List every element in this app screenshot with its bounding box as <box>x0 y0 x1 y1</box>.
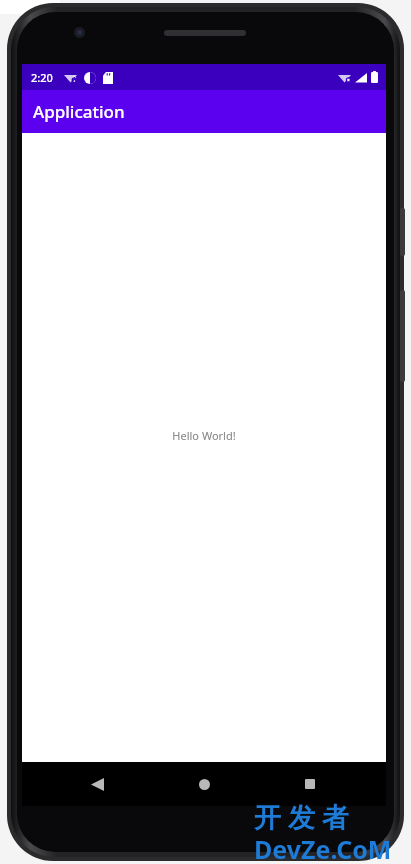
button[interactable]: Back <box>82 769 112 799</box>
staticText: 2:20 <box>31 70 53 85</box>
staticText: Application <box>33 100 125 123</box>
button[interactable]: Application <box>22 90 386 133</box>
button[interactable]: Recent apps <box>295 769 325 799</box>
button[interactable]: Home <box>189 769 219 799</box>
staticText: DevZe.CoM <box>254 832 392 864</box>
staticText: Hello World! <box>172 428 236 443</box>
staticText: 开 发 者 <box>254 798 350 835</box>
